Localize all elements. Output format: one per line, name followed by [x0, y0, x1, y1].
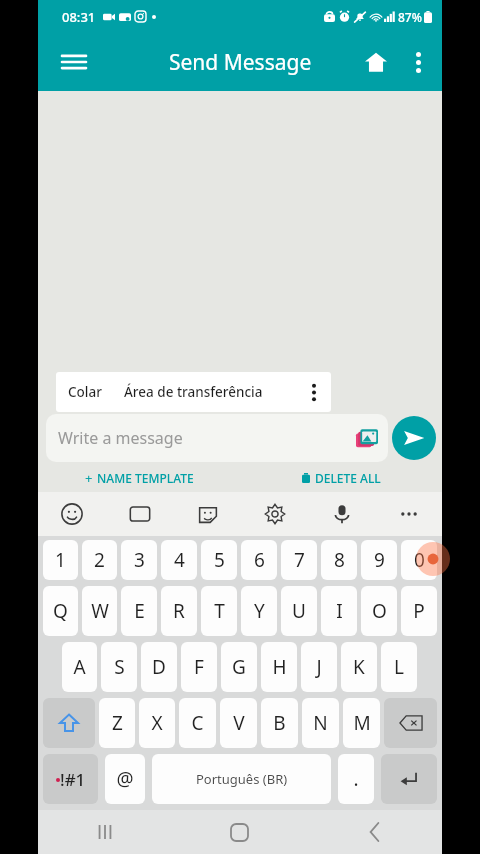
button[interactable]: 3	[121, 540, 157, 580]
staticText: @	[116, 766, 134, 792]
button[interactable]: W	[82, 586, 117, 636]
button[interactable]: O	[361, 586, 397, 636]
button[interactable]: L	[381, 642, 417, 692]
staticText: Q	[53, 598, 68, 624]
staticText: F	[194, 654, 204, 680]
staticText: U	[292, 598, 306, 624]
staticText: .	[353, 766, 359, 792]
button[interactable]: Home	[172, 810, 307, 854]
button[interactable]: N	[302, 698, 339, 748]
staticText: Z	[112, 710, 123, 736]
staticText: 08:31	[62, 8, 96, 26]
button[interactable]: X	[139, 698, 175, 748]
button[interactable]: Z	[99, 698, 135, 748]
staticText: H	[272, 654, 287, 680]
staticText: Área de transferência	[124, 383, 263, 401]
button[interactable]: 5	[201, 540, 237, 580]
staticText: X	[151, 710, 163, 736]
button[interactable]: Colar	[56, 377, 114, 407]
button[interactable]: Open navigation menu	[52, 40, 96, 84]
button[interactable]: Backspace	[384, 698, 437, 748]
button[interactable]: More options	[398, 42, 438, 82]
button[interactable]: Write a message	[46, 414, 388, 462]
staticText: P	[413, 598, 425, 624]
button[interactable]: @	[105, 754, 145, 804]
staticText: 7	[294, 547, 305, 573]
button[interactable]: S	[101, 642, 137, 692]
staticText: 2	[94, 547, 105, 573]
button[interactable]: R	[161, 586, 197, 636]
staticText: DELETE ALL	[315, 470, 381, 486]
button[interactable]: Recent apps	[38, 810, 172, 854]
button[interactable]: Keyboard settings	[241, 492, 308, 536]
button[interactable]: V	[220, 698, 257, 748]
staticText: C	[191, 710, 204, 736]
staticText: 87%	[398, 9, 422, 25]
button[interactable]: Home	[354, 40, 398, 84]
button[interactable]: C	[179, 698, 216, 748]
button[interactable]: Symbols	[43, 754, 98, 804]
button[interactable]: Emoji	[38, 492, 106, 536]
button[interactable]: More clipboard options	[297, 372, 331, 412]
button[interactable]: 9	[361, 540, 397, 580]
button[interactable]: GIF	[106, 492, 174, 536]
staticText: 5	[214, 547, 225, 573]
staticText: 9	[374, 547, 385, 573]
staticText: I	[336, 598, 343, 624]
staticText: L	[394, 654, 404, 680]
button[interactable]: +	[38, 464, 240, 492]
button[interactable]: H	[261, 642, 297, 692]
staticText: 0	[414, 547, 425, 573]
button[interactable]: 8	[321, 540, 357, 580]
button[interactable]: B	[261, 698, 298, 748]
button[interactable]: J	[301, 642, 337, 692]
button[interactable]: A	[62, 642, 97, 692]
staticText: 4	[174, 547, 185, 573]
staticText: W	[91, 598, 109, 624]
button[interactable]: 2	[82, 540, 117, 580]
button[interactable]: T	[201, 586, 237, 636]
button[interactable]: P	[401, 586, 437, 636]
staticText: B	[273, 710, 286, 736]
button[interactable]: Stickers	[174, 492, 241, 536]
button[interactable]: Área de transferência	[118, 377, 269, 407]
button[interactable]: Attach image	[350, 421, 384, 455]
staticText: J	[316, 654, 322, 680]
staticText: Colar	[68, 383, 102, 401]
button[interactable]: Português (BR)	[152, 754, 331, 804]
button[interactable]: G	[221, 642, 257, 692]
staticText: Português (BR)	[196, 770, 288, 788]
button[interactable]: D	[141, 642, 177, 692]
staticText: A	[73, 654, 86, 680]
button[interactable]: DELETE ALL	[240, 464, 442, 492]
button[interactable]: Shift	[43, 698, 95, 748]
button[interactable]: Send message	[392, 416, 436, 460]
button[interactable]: Voice input	[308, 492, 375, 536]
button[interactable]: 6	[241, 540, 277, 580]
staticText: 6	[254, 547, 265, 573]
button[interactable]: F	[181, 642, 217, 692]
staticText: Send Message	[169, 48, 312, 77]
staticText: +	[85, 469, 93, 487]
button[interactable]: 7	[281, 540, 317, 580]
staticText: Write a message	[58, 427, 183, 449]
button[interactable]: .	[338, 754, 374, 804]
button[interactable]: 0	[401, 540, 437, 580]
button[interactable]: E	[121, 586, 157, 636]
button[interactable]: Back	[307, 810, 442, 854]
button[interactable]: 4	[161, 540, 197, 580]
staticText: T	[214, 598, 225, 624]
button[interactable]: M	[343, 698, 380, 748]
button[interactable]: Q	[43, 586, 78, 636]
staticText: S	[114, 654, 125, 680]
staticText: 1	[55, 547, 66, 573]
staticText: V	[233, 710, 245, 736]
button[interactable]: I	[321, 586, 357, 636]
button[interactable]: More	[375, 492, 442, 536]
button[interactable]: U	[281, 586, 317, 636]
button[interactable]: Y	[241, 586, 277, 636]
button[interactable]: Enter	[381, 754, 437, 804]
staticText: E	[134, 598, 145, 624]
button[interactable]: K	[341, 642, 377, 692]
button[interactable]: 1	[43, 540, 78, 580]
